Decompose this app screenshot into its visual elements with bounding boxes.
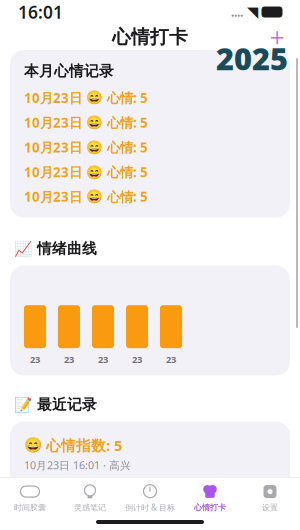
staticText: 2025 (216, 38, 288, 79)
staticText: + (269, 19, 284, 55)
staticText: 😄 (86, 140, 103, 155)
staticText: 心情指数: 5 (46, 489, 122, 509)
staticText: 最近记录 (37, 396, 97, 414)
staticText: 23 (166, 353, 176, 366)
staticText: 灵感笔记 (74, 503, 106, 512)
staticText: 😄 (24, 491, 42, 507)
staticText: 心情: 5 (107, 114, 148, 131)
staticText: 心情指数: 5 (46, 436, 122, 455)
button[interactable]: 倒计时 & 目标 (120, 477, 180, 515)
staticText: 10月23日 (24, 138, 82, 156)
staticText: 📈 (14, 240, 32, 257)
staticText: 心情: 5 (107, 89, 148, 107)
staticText: 心情打卡 (112, 25, 188, 48)
button[interactable]: 时间胶囊 (0, 478, 60, 514)
staticText: 😄 (86, 115, 103, 130)
button[interactable]: 设置 (240, 478, 300, 514)
staticText: ◥ (247, 4, 258, 20)
staticText: 倒计时 & 目标 (125, 502, 175, 513)
staticText: 10月23日 (24, 114, 82, 131)
staticText: 本月心情记录 (24, 62, 114, 80)
staticText: .... (231, 4, 243, 20)
staticText: 10月23日 (24, 163, 82, 181)
staticText: 23 (132, 353, 142, 366)
staticText: 情绪曲线 (37, 239, 97, 257)
staticText: 😄 (24, 437, 42, 454)
staticText: 23 (64, 353, 74, 366)
staticText: 😄 (86, 189, 103, 204)
button[interactable]: 新增心情记录 (262, 23, 292, 51)
staticText: 心情: 5 (107, 138, 148, 156)
staticText: 23 (98, 353, 108, 366)
staticText: 心情: 5 (107, 163, 148, 181)
staticText: 📝 (14, 396, 32, 413)
staticText: 设置 (262, 503, 278, 512)
staticText: 10月23日 15:59 · 创建胶囊 (24, 512, 153, 526)
staticText: 10月23日 (24, 89, 82, 107)
staticText: 😄 (86, 164, 103, 180)
staticText: 心情: 5 (107, 188, 148, 205)
button[interactable]: 😄 (24, 487, 276, 528)
staticText: 时间胶囊 (14, 503, 46, 512)
staticText: 😄 (86, 90, 103, 105)
staticText: 16:01 (18, 0, 63, 23)
button[interactable]: 灵感笔记 (60, 478, 120, 514)
button[interactable]: 😄 (24, 434, 276, 474)
staticText: 10月23日 (24, 188, 82, 205)
staticText: 10月23日 16:01 · 高兴 (24, 458, 131, 472)
staticText: 心情打卡 (194, 503, 226, 512)
button[interactable]: 心情打卡 (180, 478, 240, 514)
staticText: 23 (30, 353, 40, 366)
